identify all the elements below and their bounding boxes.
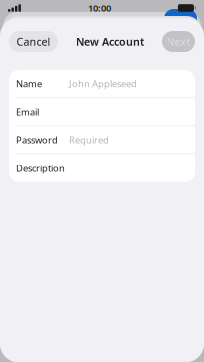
button[interactable]: Name [9,70,195,97]
staticText: Email [16,106,39,118]
staticText: New Account [76,34,144,49]
staticText: 10:00 [88,2,111,14]
staticText: Password [16,134,58,146]
button[interactable]: Next [162,31,195,52]
staticText: Required [69,134,109,146]
staticText: Name [16,77,42,90]
button[interactable]: Password [9,126,195,154]
button[interactable]: Cancel [9,31,58,52]
button[interactable]: Email [9,98,195,125]
staticText: Cancel [16,34,50,49]
staticText: John Appleseed [69,77,137,90]
staticText: Description [16,162,65,174]
staticText: Next [166,34,190,49]
button[interactable]: Description [9,154,195,182]
